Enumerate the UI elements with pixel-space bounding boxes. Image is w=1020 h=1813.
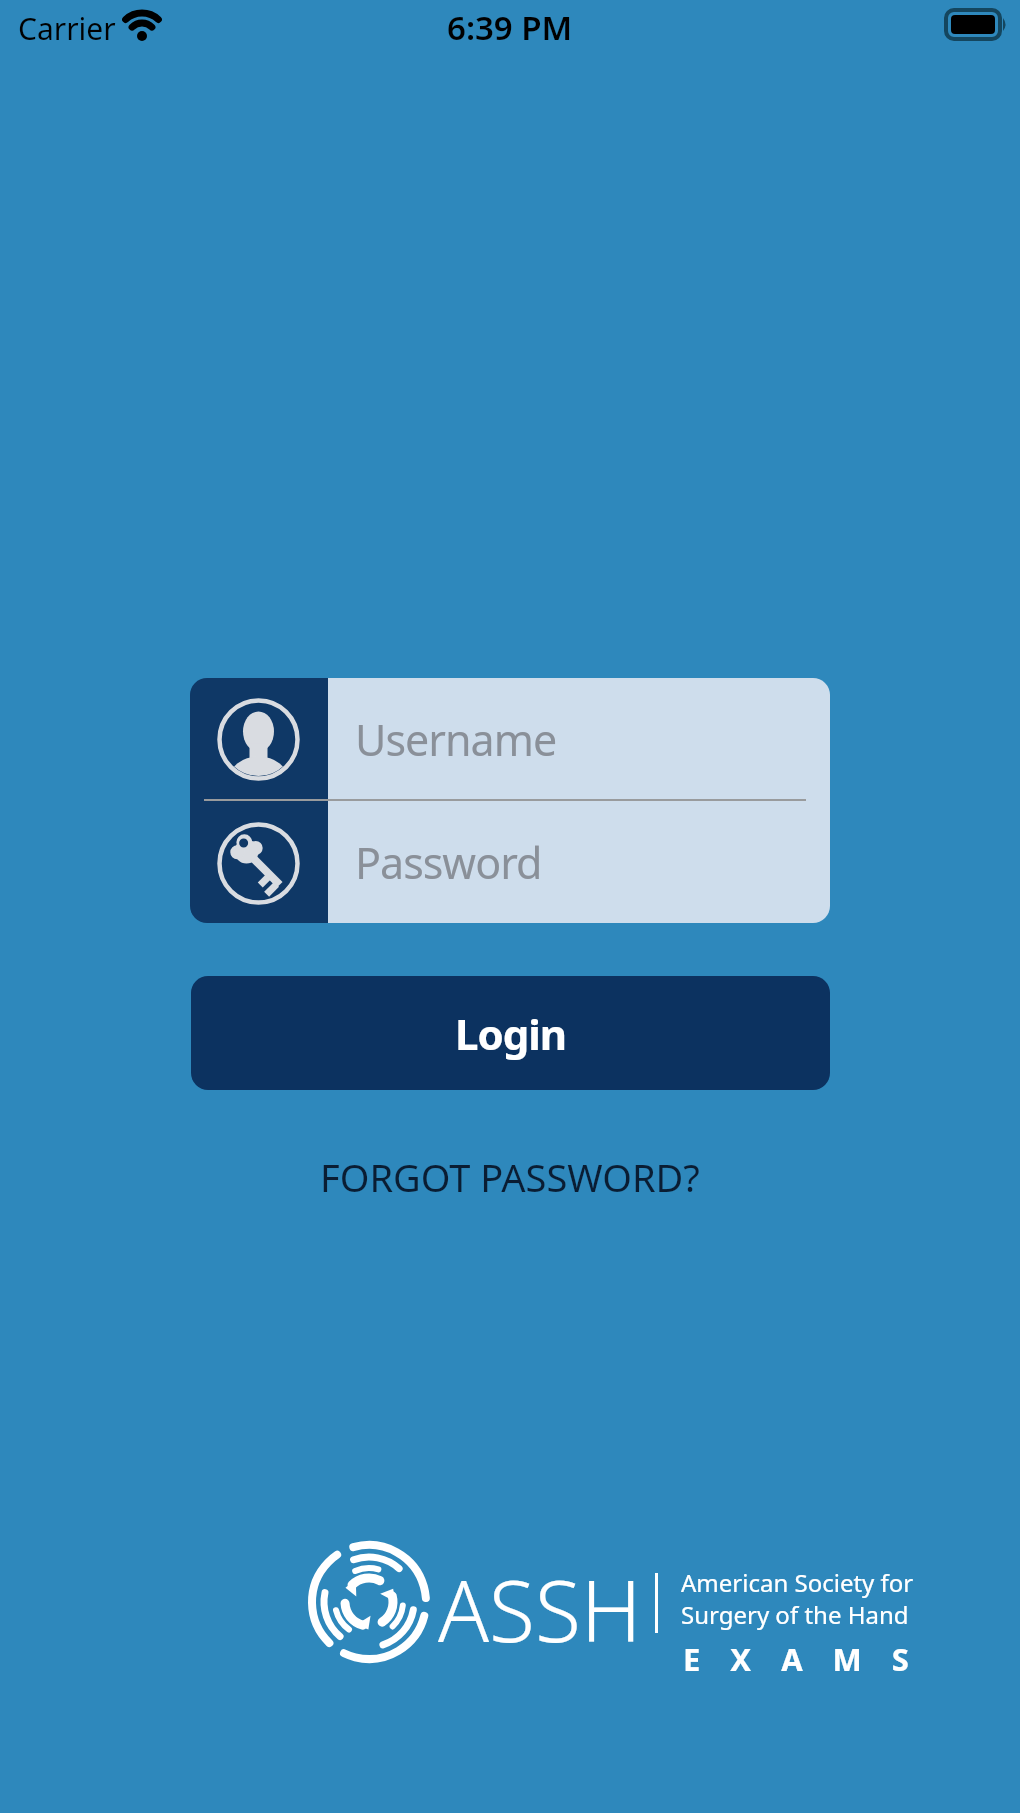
staticText: Username (355, 710, 557, 769)
staticText: Carrier (18, 8, 116, 49)
staticText: 6:39 PM (447, 5, 573, 50)
button[interactable]: Login (191, 976, 830, 1090)
staticText: ASSH (438, 1552, 642, 1646)
staticText: Surgery of the Hand (681, 1598, 909, 1631)
button[interactable]: FORGOT PASSWORD? (320, 1151, 700, 1203)
staticText: Password (355, 833, 542, 892)
staticText: Login (455, 1005, 567, 1062)
button[interactable]: Username (328, 678, 830, 800)
staticText: American Society for (681, 1566, 914, 1599)
button[interactable]: Password (328, 801, 830, 923)
staticText: EXAMS (683, 1638, 939, 1680)
staticText: FORGOT PASSWORD? (320, 1151, 700, 1203)
